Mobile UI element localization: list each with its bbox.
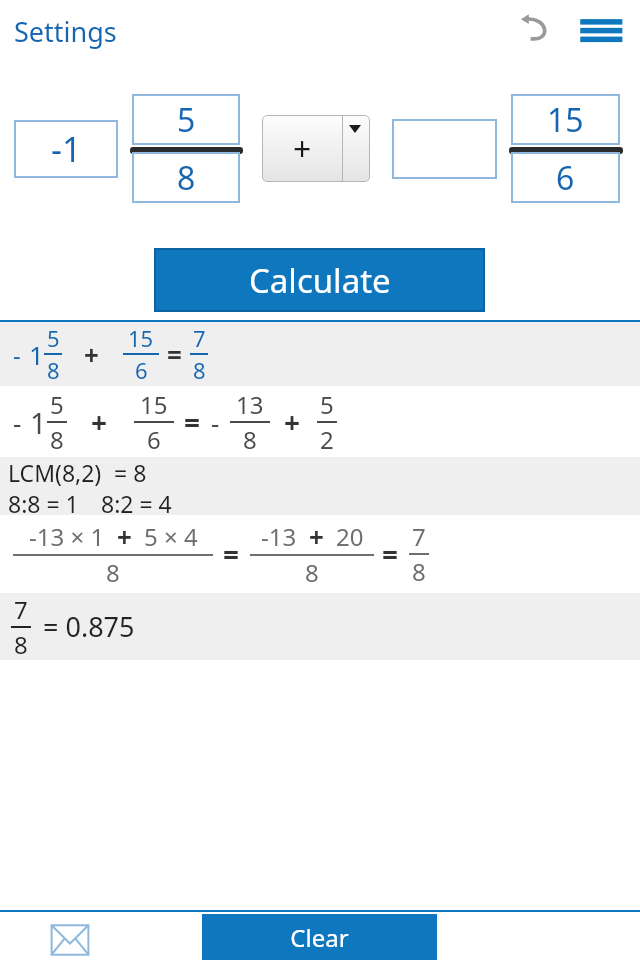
staticText: = 0.875	[43, 608, 135, 645]
staticText: -13 × 1	[29, 520, 105, 553]
staticText: -	[13, 338, 21, 371]
staticText: +	[91, 403, 108, 441]
staticText: 20	[336, 520, 364, 553]
staticText: -1	[51, 126, 82, 172]
staticText: 8	[305, 556, 319, 589]
staticText: LCM(8,2)	[8, 457, 102, 488]
staticText: -	[13, 405, 22, 440]
staticText: 8	[243, 423, 257, 456]
staticText: 6	[135, 355, 148, 385]
button[interactable]: -	[0, 386, 640, 457]
staticText: 6	[147, 423, 161, 456]
staticText: 8	[177, 156, 196, 200]
staticText: =	[184, 403, 201, 441]
button[interactable]: Settings	[14, 13, 117, 50]
button[interactable]: Email	[50, 924, 90, 956]
staticText: +	[284, 403, 301, 441]
staticText: 8	[193, 355, 206, 385]
button[interactable]: -1	[14, 120, 118, 178]
staticText: 1	[29, 337, 44, 372]
staticText: 1	[30, 403, 47, 442]
staticText: 15	[140, 388, 168, 421]
staticText: 8	[47, 355, 60, 385]
staticText: 5 × 4	[144, 520, 198, 553]
button[interactable]: 15	[511, 94, 620, 145]
button[interactable]: Undo	[513, 6, 557, 50]
button[interactable]: Clear	[202, 914, 437, 960]
staticText: 8:2 = 4	[101, 488, 172, 515]
staticText: 15	[547, 98, 584, 142]
button[interactable]	[392, 119, 497, 179]
staticText: 8:8 = 1	[8, 488, 79, 515]
staticText: = 8	[114, 457, 147, 488]
staticText: 7	[193, 323, 206, 353]
staticText: Settings	[14, 13, 117, 50]
staticText: =	[382, 535, 399, 573]
button[interactable]: 7	[0, 593, 640, 660]
staticText: 7	[412, 520, 426, 553]
staticText: 15	[128, 323, 154, 353]
staticText: 6	[556, 156, 575, 200]
staticText: =	[167, 337, 182, 372]
staticText: 8	[50, 423, 64, 456]
staticText: 8	[106, 556, 120, 589]
button[interactable]: -13 × 1	[0, 515, 640, 593]
staticText: -	[211, 405, 220, 440]
button[interactable]: -	[0, 322, 640, 386]
button[interactable]: 6	[511, 152, 620, 203]
button[interactable]: Calculate	[154, 248, 485, 312]
staticText: 7	[14, 593, 28, 626]
staticText: +	[117, 519, 132, 554]
button[interactable]: +	[262, 115, 370, 182]
staticText: Calculate	[249, 258, 391, 303]
staticText: -13	[261, 520, 297, 553]
staticText: +	[309, 519, 324, 554]
staticText: 2	[320, 423, 334, 456]
staticText: +	[293, 127, 312, 171]
staticText: +	[84, 337, 99, 372]
staticText: =	[223, 535, 240, 573]
staticText: 8	[412, 555, 426, 588]
button[interactable]: 5	[132, 94, 240, 145]
staticText: 8	[14, 628, 28, 660]
staticText: 5	[50, 388, 64, 421]
staticText: 13	[236, 388, 264, 421]
button[interactable]: Menu	[574, 10, 626, 48]
staticText: 5	[320, 388, 334, 421]
button[interactable]: LCM(8,2)	[0, 457, 640, 515]
staticText: 5	[47, 323, 60, 353]
staticText: 5	[177, 98, 196, 142]
button[interactable]: 8	[132, 152, 240, 203]
staticText: Clear	[290, 921, 349, 954]
